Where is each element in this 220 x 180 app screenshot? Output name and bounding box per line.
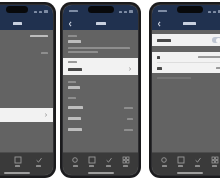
button[interactable]: Toggle <box>212 37 220 43</box>
button[interactable] <box>63 58 138 75</box>
button[interactable] <box>63 102 138 113</box>
button[interactable]: Tab 1 <box>156 153 172 170</box>
button[interactable]: Tab 2 <box>172 153 189 170</box>
button[interactable]: Back <box>155 20 163 28</box>
button[interactable] <box>0 47 53 58</box>
button[interactable] <box>152 63 220 73</box>
button[interactable] <box>0 108 53 122</box>
button[interactable]: Tab 2 <box>7 153 28 170</box>
button[interactable]: Tab 4 <box>117 153 134 170</box>
button[interactable]: Back <box>66 20 74 28</box>
button[interactable] <box>152 52 220 62</box>
button[interactable]: Tab 4 <box>206 153 220 170</box>
button[interactable] <box>63 124 138 135</box>
button[interactable]: Tab 1 <box>67 153 83 170</box>
button[interactable]: Toggle <box>152 34 220 46</box>
button[interactable]: Tab 3 <box>100 153 117 170</box>
button[interactable]: Tab 3 <box>189 153 206 170</box>
button[interactable] <box>63 113 138 124</box>
button[interactable]: Tab 3 <box>28 153 49 170</box>
button[interactable]: Tab 2 <box>83 153 100 170</box>
